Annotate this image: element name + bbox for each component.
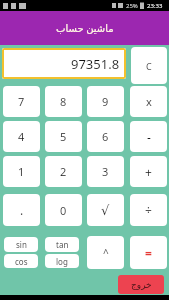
button[interactable]: خروج [118,275,164,294]
button[interactable]: ^ [87,236,124,269]
staticText: 1 [18,164,25,179]
button[interactable]: cos [4,254,38,268]
staticText: 0 [60,203,67,218]
staticText: tan [56,239,69,250]
button[interactable]: tan [45,237,79,252]
staticText: C [146,60,152,72]
button[interactable]: √ [87,194,124,226]
button[interactable]: 1 [3,156,40,187]
button[interactable]: sin [4,237,38,252]
button[interactable]: = [130,236,167,269]
button[interactable]: C [131,47,167,84]
button[interactable]: 5 [45,121,82,152]
staticText: ÷ [145,202,152,218]
staticText: + [145,164,152,180]
button[interactable]: x [130,86,167,117]
staticText: 7 [18,94,25,109]
button[interactable]: 7 [3,86,40,117]
staticText: x [146,94,152,109]
button[interactable]: 0 [45,194,82,226]
staticText: cos [15,256,28,267]
staticText: 97351.8 [71,55,120,73]
staticText: 25% [126,2,138,10]
button[interactable]: 3 [87,156,124,187]
staticText: خروج [131,280,152,290]
button[interactable]: 6 [87,121,124,152]
button[interactable]: log [45,254,79,268]
staticText: 2 [60,164,67,179]
button[interactable]: + [130,156,167,187]
staticText: ^ [103,246,109,260]
button[interactable]: . [3,194,40,226]
staticText: 6 [102,129,109,144]
staticText: 23:33 [147,2,163,10]
staticText: sin [16,239,27,250]
staticText: - [147,129,151,145]
button[interactable]: 2 [45,156,82,187]
staticText: 3 [102,164,109,179]
staticText: 5 [60,129,67,144]
staticText: 4 [18,129,25,144]
staticText: ماشین حساب [56,21,114,35]
button[interactable]: - [130,121,167,152]
button[interactable]: 8 [45,86,82,117]
staticText: √ [101,203,110,218]
button[interactable]: 4 [3,121,40,152]
staticText: 9 [102,94,109,109]
staticText: log [56,256,68,267]
button[interactable]: 9 [87,86,124,117]
staticText: = [145,245,152,261]
staticText: . [20,202,24,218]
staticText: 8 [60,94,67,109]
button[interactable]: ÷ [130,194,167,226]
button[interactable]: 97351.8 [2,48,126,79]
